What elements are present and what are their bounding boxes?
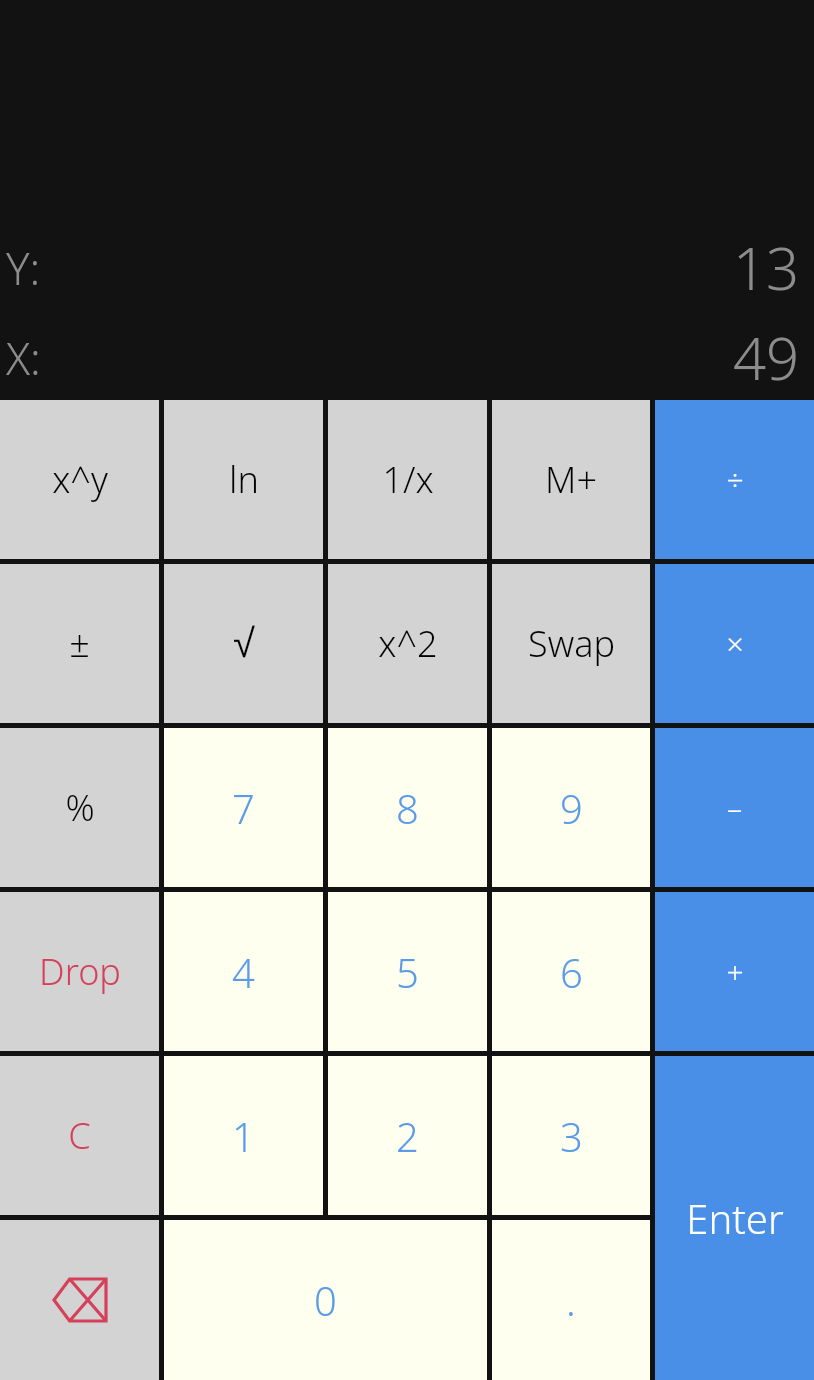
- staticText: 1/x: [382, 455, 434, 504]
- button[interactable]: +: [655, 892, 814, 1051]
- button[interactable]: Backspace: [0, 1220, 159, 1380]
- staticText: x^y: [52, 455, 108, 504]
- staticText: Y:: [6, 238, 41, 298]
- staticText: 0: [314, 1273, 337, 1327]
- button[interactable]: 0: [164, 1220, 487, 1380]
- staticText: 3: [560, 1109, 583, 1163]
- button[interactable]: ×: [655, 564, 814, 723]
- staticText: x^2: [378, 619, 438, 668]
- staticText: ×: [726, 623, 744, 664]
- button[interactable]: ±: [0, 564, 159, 723]
- staticText: ±: [69, 619, 90, 668]
- button[interactable]: √: [164, 564, 323, 723]
- staticText: 7: [232, 781, 255, 835]
- staticText: 1: [232, 1109, 255, 1163]
- staticText: .: [566, 1273, 576, 1327]
- staticText: Swap: [528, 619, 615, 668]
- button[interactable]: 8: [328, 728, 487, 887]
- staticText: %: [65, 783, 95, 832]
- button[interactable]: 7: [164, 728, 323, 887]
- staticText: √: [233, 621, 255, 666]
- button[interactable]: 5: [328, 892, 487, 1051]
- button[interactable]: –: [655, 728, 814, 887]
- staticText: 49: [733, 318, 800, 397]
- staticText: 2: [396, 1109, 419, 1163]
- button[interactable]: 4: [164, 892, 323, 1051]
- button[interactable]: C: [0, 1056, 159, 1215]
- staticText: +: [726, 951, 744, 992]
- staticText: 8: [396, 781, 419, 835]
- staticText: X:: [6, 328, 41, 388]
- button[interactable]: ÷: [655, 400, 814, 559]
- staticText: –: [727, 787, 742, 828]
- staticText: Enter: [686, 1191, 784, 1245]
- button[interactable]: 2: [328, 1056, 487, 1215]
- button[interactable]: 6: [492, 892, 650, 1051]
- staticText: Drop: [39, 947, 121, 996]
- staticText: 9: [560, 781, 583, 835]
- staticText: M+: [545, 455, 597, 504]
- button[interactable]: 1/x: [328, 400, 487, 559]
- staticText: ln: [229, 455, 259, 504]
- button[interactable]: 1: [164, 1056, 323, 1215]
- staticText: ÷: [726, 459, 744, 500]
- button[interactable]: Drop: [0, 892, 159, 1051]
- button[interactable]: 9: [492, 728, 650, 887]
- staticText: 6: [560, 945, 583, 999]
- button[interactable]: Swap: [492, 564, 650, 723]
- button[interactable]: %: [0, 728, 159, 887]
- staticText: 13: [733, 228, 800, 307]
- button[interactable]: x^2: [328, 564, 487, 723]
- staticText: 5: [396, 945, 419, 999]
- staticText: C: [68, 1111, 91, 1160]
- button[interactable]: ln: [164, 400, 323, 559]
- button[interactable]: x^y: [0, 400, 159, 559]
- button[interactable]: 3: [492, 1056, 650, 1215]
- button[interactable]: .: [492, 1220, 650, 1380]
- button[interactable]: M+: [492, 400, 650, 559]
- button[interactable]: Enter: [655, 1056, 814, 1380]
- staticText: 4: [232, 945, 255, 999]
